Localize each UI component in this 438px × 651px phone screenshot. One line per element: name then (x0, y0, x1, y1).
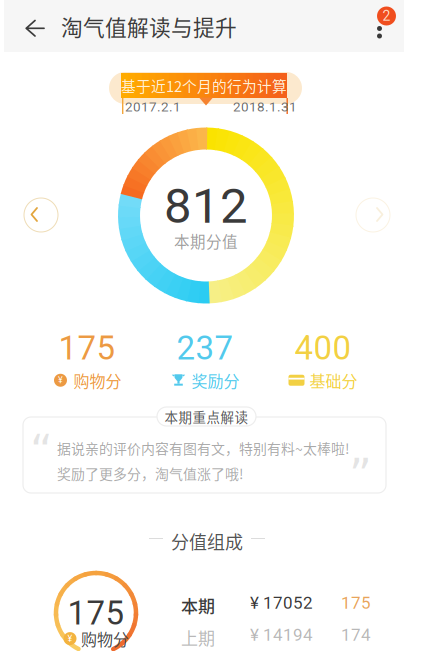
staticText: 购物分 (73, 369, 121, 392)
staticText: 基于近12个月的行为计算 (121, 75, 287, 96)
staticText: 2017.2.1 (125, 99, 181, 115)
staticText: 基础分 (309, 369, 357, 392)
staticText: 本期重点解读 (164, 407, 248, 426)
button[interactable]: Next period (351, 193, 395, 237)
staticText: 812 (164, 177, 248, 235)
button[interactable]: Previous period (19, 193, 63, 237)
staticText: 据说亲的评价内容有图有文，特别有料~太棒啦! (57, 438, 349, 458)
staticText: ¥ (67, 633, 72, 644)
staticText: 购物分 (81, 627, 129, 650)
staticText: 175 (58, 329, 115, 368)
staticText: ¥ 17052 (250, 593, 313, 613)
button[interactable]: More options (362, 0, 410, 52)
staticText: 分值组成 (171, 528, 243, 554)
staticText: ¥ (58, 375, 63, 385)
staticText: 175 (341, 593, 371, 613)
staticText: 400 (294, 329, 351, 368)
staticText: 本期分值 (174, 230, 238, 252)
staticText: 2018.1.31 (233, 99, 297, 115)
staticText: ¥ 14194 (250, 625, 313, 645)
staticText: 237 (176, 329, 233, 368)
staticText: 174 (341, 625, 371, 645)
staticText: 2 (382, 8, 390, 24)
staticText: 淘气值解读与提升 (61, 10, 237, 42)
staticText: 175 (67, 594, 124, 633)
staticText: 本期 (181, 593, 215, 618)
staticText: 奖励了更多分，淘气值涨了哦! (57, 463, 243, 483)
staticText: 奖励分 (191, 369, 239, 392)
button[interactable]: Back (8, 0, 62, 52)
staticText: “ (30, 426, 53, 477)
staticText: ” (349, 450, 372, 501)
staticText: 上期 (181, 625, 215, 650)
